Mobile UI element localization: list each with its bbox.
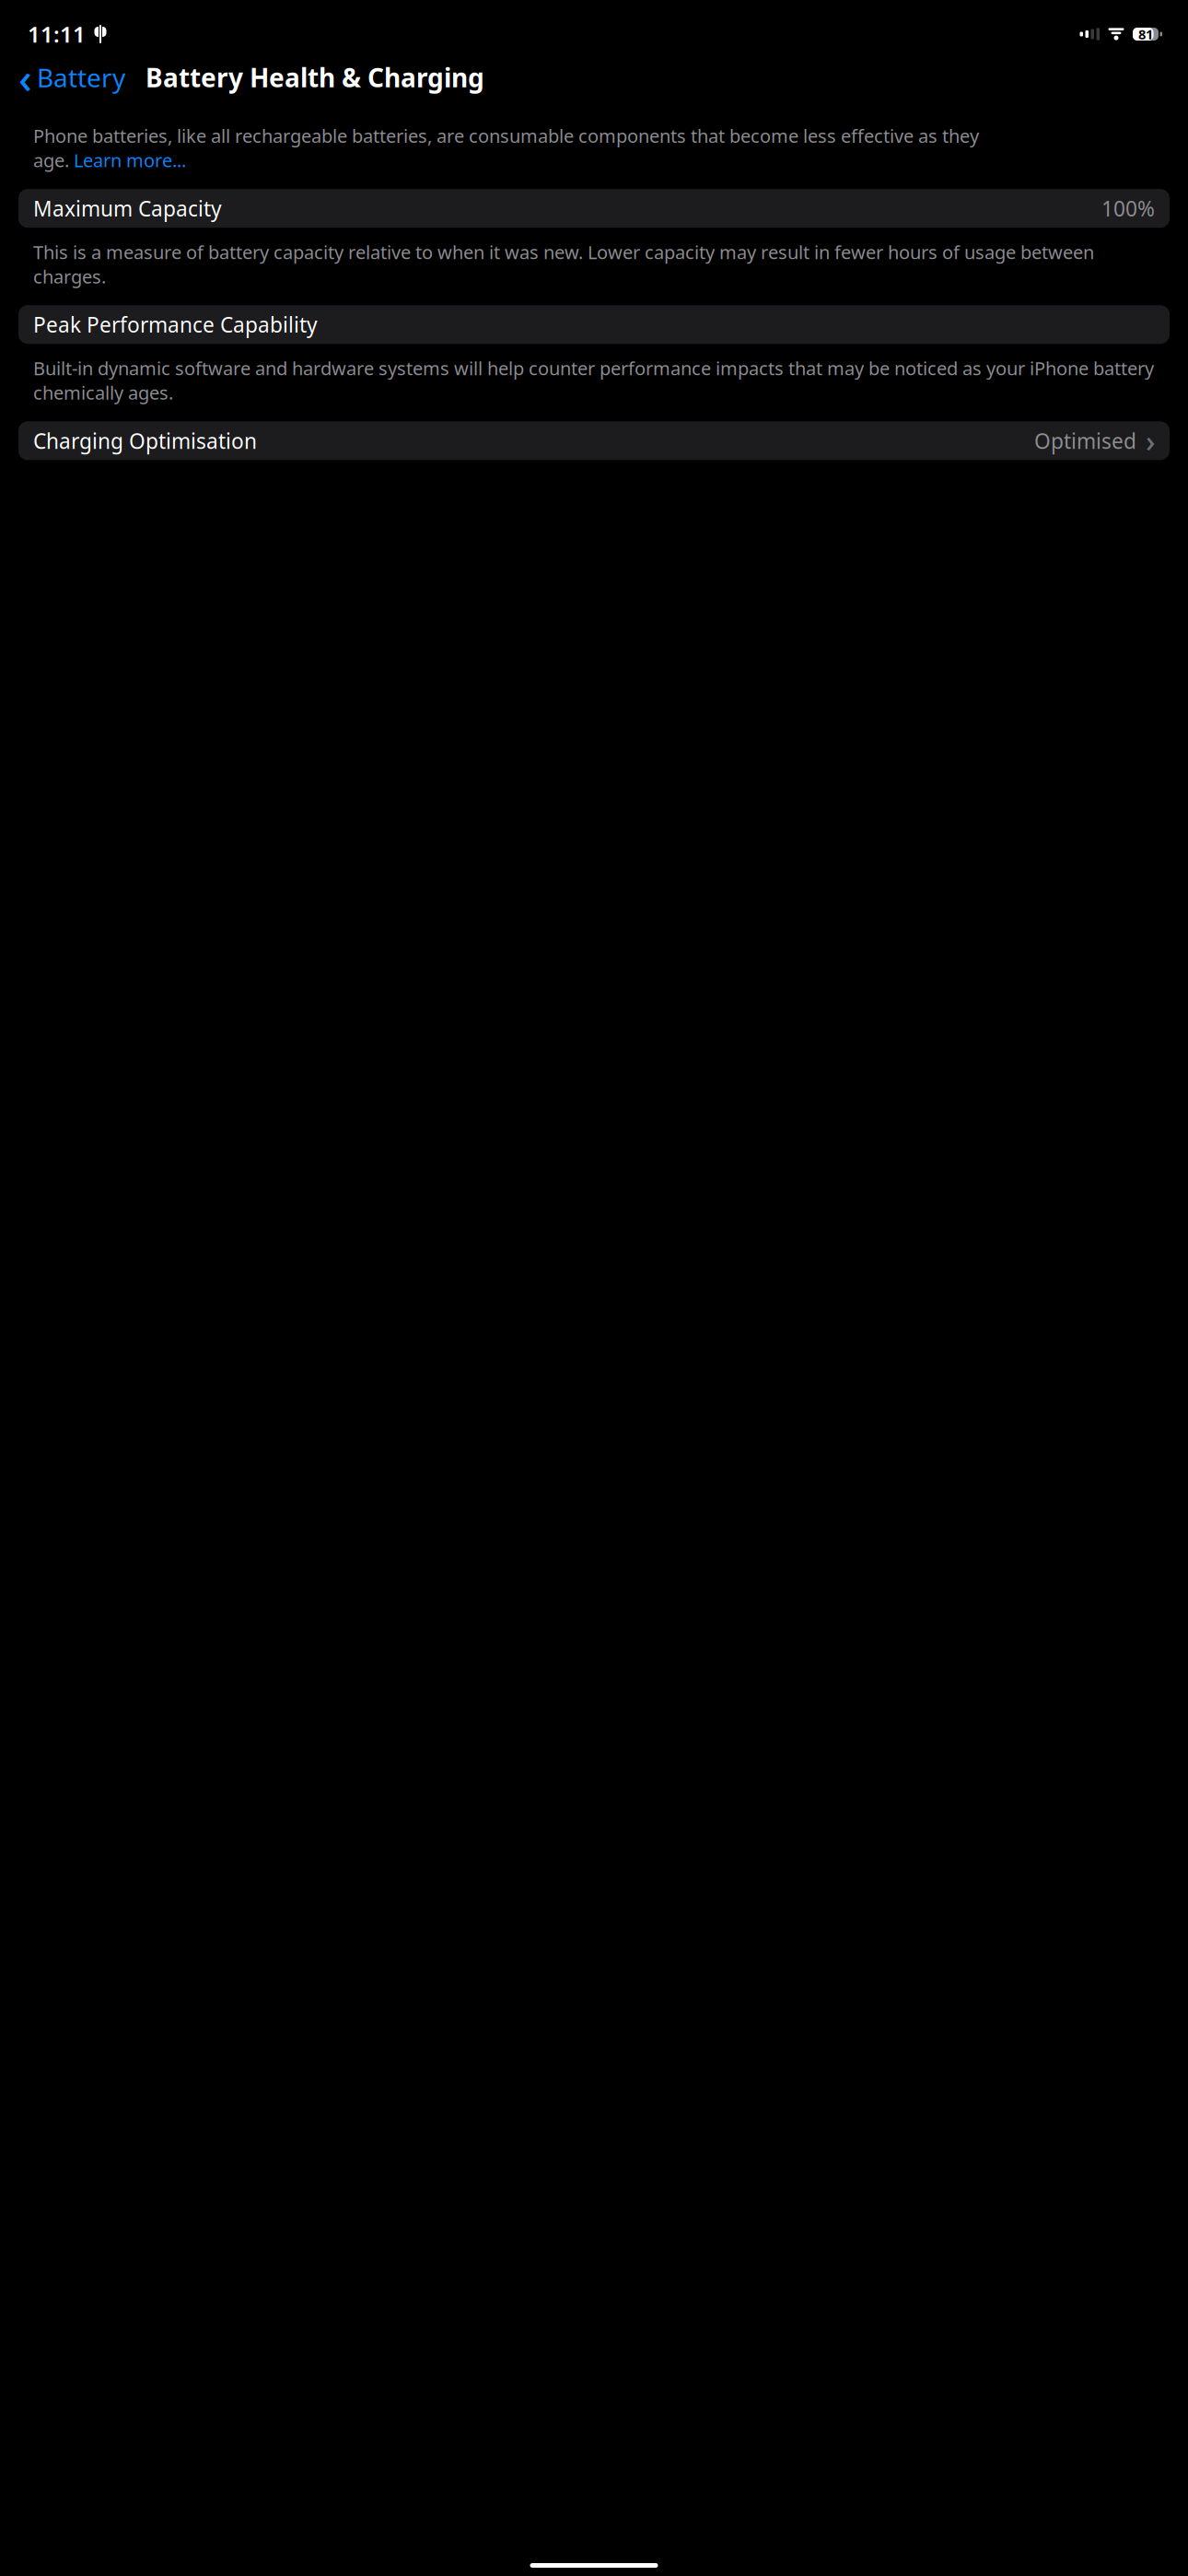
staticText: Peak Performance Capability bbox=[33, 311, 318, 338]
button[interactable]: Peak Performance Capability bbox=[18, 305, 1170, 344]
button[interactable]: Charging Optimisation bbox=[18, 421, 1170, 460]
staticText: 100% bbox=[1101, 194, 1155, 222]
staticText: Battery Health & Charging bbox=[146, 60, 484, 95]
staticText: age. bbox=[33, 148, 74, 172]
staticText: Battery bbox=[37, 60, 125, 95]
staticText: This is a measure of battery capacity re… bbox=[33, 240, 1094, 289]
staticText: Optimised bbox=[1034, 427, 1136, 455]
staticText: 11:11 bbox=[28, 19, 86, 49]
button[interactable]: ‹ bbox=[9, 57, 131, 98]
staticText: Charging Optimisation bbox=[33, 427, 257, 455]
staticText: 81 bbox=[1138, 25, 1153, 43]
staticText: Learn more... bbox=[74, 148, 186, 172]
button[interactable]: Maximum Capacity bbox=[18, 189, 1170, 228]
staticText: › bbox=[1146, 421, 1155, 460]
staticText: ‹ bbox=[18, 50, 32, 105]
staticText: Maximum Capacity bbox=[33, 194, 222, 222]
staticText: Built-in dynamic software and hardware s… bbox=[33, 356, 1154, 405]
button[interactable]: Learn more... bbox=[74, 148, 186, 172]
staticText: Phone batteries, like all rechargeable b… bbox=[33, 123, 979, 148]
